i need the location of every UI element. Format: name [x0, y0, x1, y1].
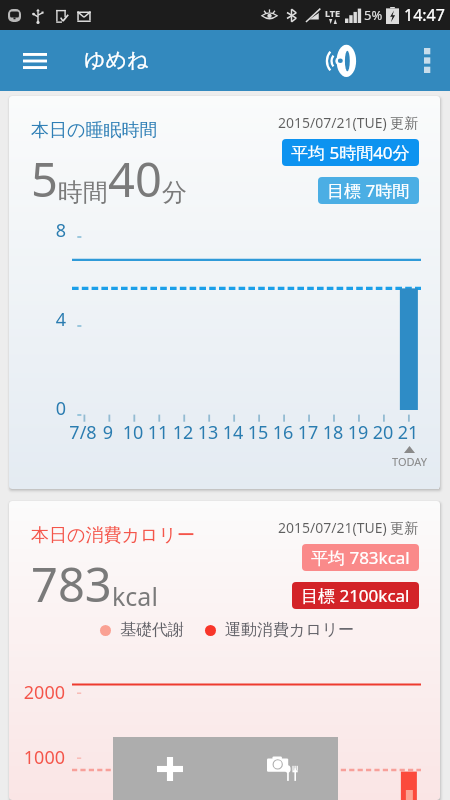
- staticText: 目標 2100kcal: [301, 584, 410, 607]
- staticText: 40: [108, 147, 162, 211]
- staticText: TODAY: [392, 454, 427, 469]
- button[interactable]: Add record: [142, 741, 197, 796]
- button[interactable]: 目標 2100kcal: [292, 582, 419, 609]
- staticText: 4: [34, 307, 66, 332]
- button[interactable]: More options: [405, 30, 450, 91]
- staticText: 21: [390, 420, 426, 445]
- staticText: 分: [162, 177, 187, 208]
- staticText: 2015/07/21(TUE) 更新: [278, 113, 419, 132]
- staticText: 16: [265, 420, 301, 445]
- button[interactable]: Menu: [0, 30, 70, 91]
- staticText: kcal: [112, 579, 158, 613]
- staticText: 2000: [10, 680, 65, 705]
- staticText: 運動消費カロリー: [225, 620, 355, 640]
- staticText: 9: [90, 420, 126, 445]
- staticText: 18: [315, 420, 351, 445]
- staticText: ゆめね: [84, 47, 149, 73]
- button[interactable]: 本日の消費カロリー: [9, 501, 440, 800]
- staticText: 19: [340, 420, 376, 445]
- staticText: 14:47: [404, 4, 445, 26]
- staticText: 783: [31, 552, 112, 616]
- staticText: 0: [34, 396, 66, 421]
- staticText: 5%: [364, 6, 383, 24]
- staticText: 13: [190, 420, 226, 445]
- staticText: 本日の消費カロリー: [31, 524, 195, 547]
- button[interactable]: 目標 7時間: [318, 177, 419, 204]
- staticText: 時間: [58, 177, 108, 208]
- staticText: 目標 7時間: [327, 179, 410, 202]
- button[interactable]: 本日の睡眠時間: [9, 96, 440, 489]
- staticText: 10: [115, 420, 151, 445]
- staticText: 基礎代謝: [120, 620, 184, 640]
- staticText: 17: [290, 420, 326, 445]
- staticText: 5: [31, 147, 58, 211]
- staticText: 平均 783kcal: [311, 546, 410, 569]
- staticText: 平均 5時間40分: [291, 141, 410, 164]
- staticText: 20: [365, 420, 401, 445]
- staticText: 7/8: [65, 420, 101, 445]
- staticText: 14: [215, 420, 251, 445]
- staticText: 本日の睡眠時間: [31, 119, 158, 142]
- button[interactable]: Sound settings: [313, 37, 365, 85]
- button[interactable]: Record meal: [257, 741, 307, 796]
- staticText: 15: [240, 420, 276, 445]
- staticText: 8: [34, 218, 66, 243]
- button[interactable]: 平均 783kcal: [302, 544, 419, 571]
- staticText: 12: [165, 420, 201, 445]
- button[interactable]: 平均 5時間40分: [282, 139, 419, 166]
- staticText: 11: [140, 420, 176, 445]
- staticText: LTE: [325, 7, 341, 19]
- staticText: 2015/07/21(TUE) 更新: [278, 518, 419, 537]
- staticText: 1000: [10, 745, 65, 770]
